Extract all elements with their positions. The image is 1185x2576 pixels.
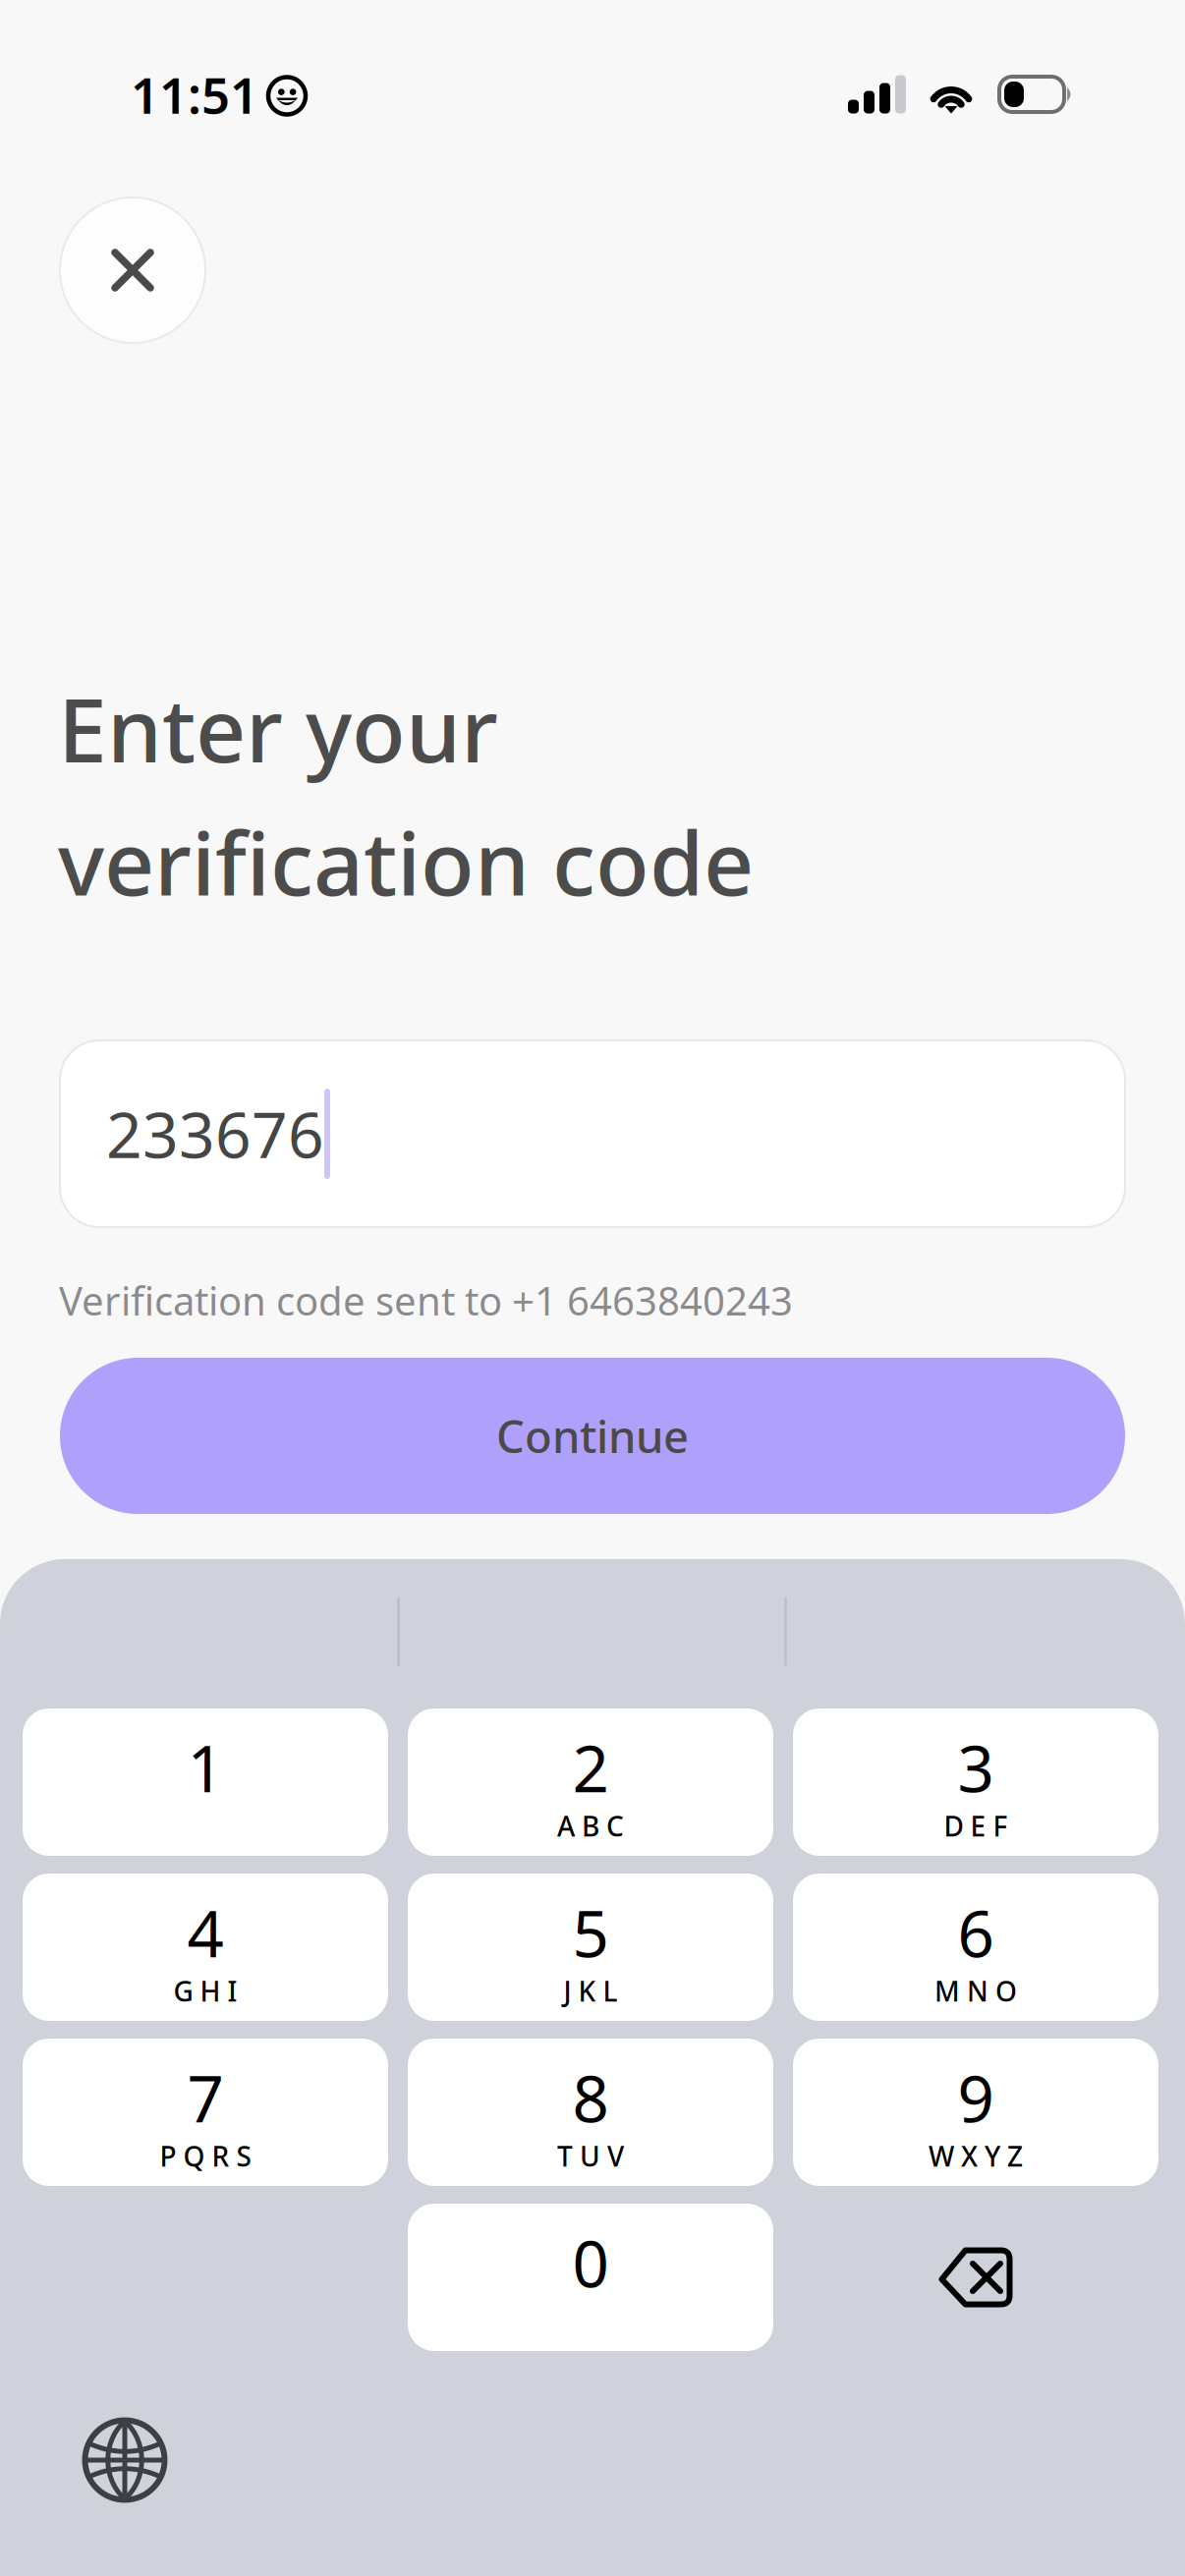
button[interactable]: 6 bbox=[793, 1874, 1158, 2021]
button[interactable]: 0 bbox=[408, 2204, 773, 2351]
staticText: 6 bbox=[958, 1890, 994, 1975]
staticText: T U V bbox=[557, 2138, 624, 2174]
button[interactable]: Continue bbox=[60, 1358, 1125, 1514]
staticText: 5 bbox=[572, 1890, 609, 1975]
staticText: P Q R S bbox=[160, 2138, 251, 2174]
staticText: Continue bbox=[496, 1406, 689, 1465]
button[interactable]: Change keyboard bbox=[61, 2396, 189, 2524]
staticText: Verification code sent to +1 6463840243 bbox=[59, 1274, 793, 1326]
staticText: 9 bbox=[958, 2055, 994, 2140]
staticText: verification code bbox=[58, 803, 754, 920]
staticText: 233676 bbox=[106, 1092, 324, 1176]
staticText: 0 bbox=[572, 2220, 609, 2305]
staticText: 2 bbox=[572, 1725, 609, 1810]
button[interactable]: 8 bbox=[408, 2039, 773, 2186]
staticText: A B C bbox=[557, 1808, 624, 1844]
button[interactable]: 5 bbox=[408, 1874, 773, 2021]
button[interactable]: 1 bbox=[23, 1708, 388, 1856]
staticText: 8 bbox=[572, 2055, 609, 2140]
staticText: D E F bbox=[944, 1808, 1008, 1844]
staticText: Enter your bbox=[58, 670, 498, 787]
button[interactable]: 233676 bbox=[60, 1040, 1125, 1227]
staticText: M N O bbox=[934, 1973, 1017, 2009]
button[interactable]: 2 bbox=[408, 1708, 773, 1856]
staticText: W X Y Z bbox=[929, 2138, 1023, 2174]
staticText: J K L bbox=[564, 1973, 618, 2009]
button[interactable]: 3 bbox=[793, 1708, 1158, 1856]
staticText: 11:51 bbox=[131, 61, 258, 127]
staticText: 7 bbox=[187, 2055, 224, 2140]
button[interactable]: 7 bbox=[23, 2039, 388, 2186]
staticText: 4 bbox=[187, 1890, 224, 1975]
staticText: 1 bbox=[187, 1725, 224, 1810]
staticText: G H I bbox=[173, 1973, 237, 2009]
button[interactable]: 4 bbox=[23, 1874, 388, 2021]
staticText: 3 bbox=[958, 1725, 994, 1810]
button[interactable]: Delete bbox=[793, 2204, 1158, 2351]
button[interactable]: 9 bbox=[793, 2039, 1158, 2186]
button[interactable]: Close bbox=[60, 197, 205, 343]
